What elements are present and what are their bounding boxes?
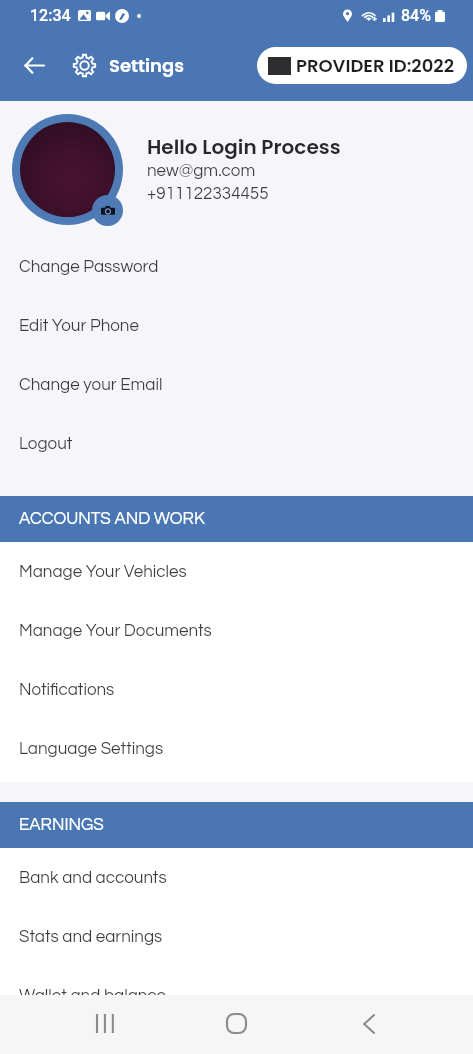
button[interactable]: Change profile photo bbox=[92, 195, 123, 226]
staticText: Manage Your Vehicles bbox=[19, 563, 187, 581]
button[interactable]: Stats and earnings bbox=[0, 907, 473, 966]
staticText: +911122334455 bbox=[147, 185, 269, 203]
staticText: ACCOUNTS AND WORK bbox=[19, 510, 205, 528]
button[interactable]: Manage Your Documents bbox=[0, 601, 473, 660]
staticText: Notifications bbox=[19, 681, 115, 699]
staticText: Logout bbox=[19, 435, 73, 453]
button[interactable]: Language Settings bbox=[0, 719, 473, 778]
staticText: Wallet and balance bbox=[19, 987, 167, 995]
button[interactable]: Change your Email bbox=[0, 355, 473, 414]
button[interactable]: Wallet and balance bbox=[0, 966, 473, 995]
button[interactable]: Edit Your Phone bbox=[0, 296, 473, 355]
staticText: Edit Your Phone bbox=[19, 317, 139, 335]
staticText: Stats and earnings bbox=[19, 928, 163, 946]
button[interactable]: Change Password bbox=[0, 237, 473, 296]
staticText: Settings bbox=[109, 53, 184, 78]
staticText: Language Settings bbox=[19, 740, 164, 758]
button[interactable]: Recent apps bbox=[70, 995, 140, 1054]
button[interactable]: Back bbox=[16, 45, 52, 85]
staticText: 84% bbox=[401, 6, 431, 25]
button[interactable]: Home bbox=[201, 995, 271, 1054]
button[interactable]: Manage Your Vehicles bbox=[0, 542, 473, 601]
button[interactable]: PROVIDER ID:2022 bbox=[257, 47, 467, 84]
staticText: new@gm.com bbox=[147, 162, 256, 180]
staticText: PROVIDER ID:2022 bbox=[296, 53, 454, 78]
staticText: Hello Login Process bbox=[147, 133, 341, 161]
button[interactable]: Back bbox=[334, 995, 404, 1054]
staticText: Manage Your Documents bbox=[19, 622, 212, 640]
button[interactable]: Bank and accounts bbox=[0, 848, 473, 907]
button[interactable]: Notifications bbox=[0, 660, 473, 719]
button[interactable]: Profile photo bbox=[20, 122, 115, 217]
button[interactable]: Logout bbox=[0, 414, 473, 473]
staticText: Change Password bbox=[19, 258, 159, 276]
staticText: Change your Email bbox=[19, 376, 163, 394]
staticText: EARNINGS bbox=[19, 816, 104, 834]
staticText: 12:34 bbox=[30, 6, 71, 25]
staticText: Bank and accounts bbox=[19, 869, 167, 887]
